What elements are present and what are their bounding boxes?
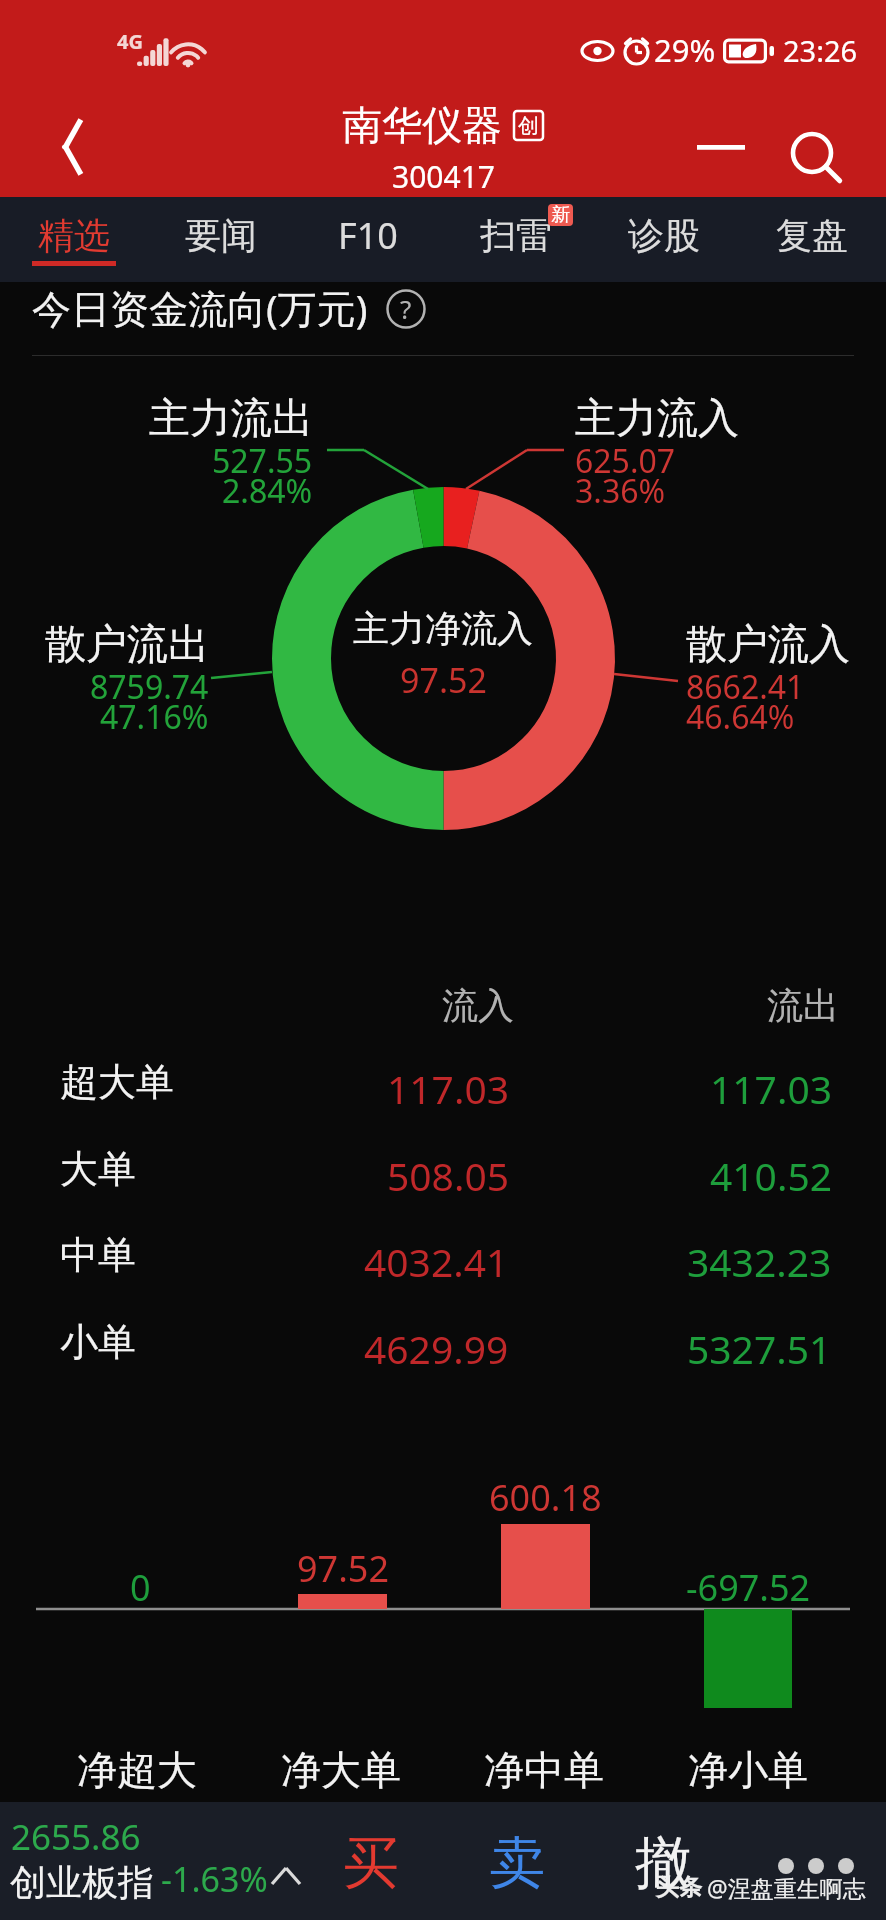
staticText: 净中单 (484, 1745, 604, 1795)
staticText: 4032.41 (364, 1235, 509, 1288)
staticText: 23:26 (783, 31, 858, 70)
staticText: 97.52 (400, 657, 487, 703)
button[interactable]: 撤 (603, 1802, 723, 1920)
staticText: 流入 (442, 983, 514, 1028)
staticText: 扫雷 (480, 213, 552, 258)
staticText: 508.05 (387, 1149, 509, 1202)
staticText: 大单 (60, 1145, 136, 1193)
button[interactable]: 诊股 (590, 197, 738, 282)
staticText: 要闻 (185, 213, 257, 258)
staticText: -697.52 (686, 1563, 811, 1612)
button[interactable]: 中单 (0, 1217, 886, 1303)
staticText: 410.52 (710, 1149, 832, 1202)
staticText: F10 (338, 211, 398, 260)
staticText: 撤 (635, 1828, 691, 1899)
staticText: 3.36% (575, 469, 666, 513)
button[interactable]: 扫雷 (442, 197, 590, 282)
staticText: 散户流出 (45, 619, 209, 671)
button[interactable]: 精选 (0, 197, 147, 282)
staticText: 净大单 (281, 1745, 401, 1795)
staticText: @涅盘重生啊志 (707, 1872, 866, 1903)
staticText: 46.64% (686, 695, 795, 739)
button[interactable]: Search (772, 107, 852, 187)
staticText: 2.84% (222, 469, 313, 513)
button[interactable]: Back (36, 113, 104, 181)
button[interactable]: 大单 (0, 1131, 886, 1217)
staticText: 净超大 (77, 1745, 197, 1795)
staticText: 超大单 (60, 1058, 174, 1106)
staticText: 8662.41 (686, 665, 805, 709)
button[interactable]: Minimize (681, 107, 761, 187)
staticText: 600.18 (489, 1473, 602, 1522)
staticText: 流出 (767, 983, 839, 1028)
staticText: 2655.86 (11, 1813, 141, 1861)
staticText: 南华仪器 (342, 100, 502, 150)
staticText: 创业板指 (10, 1860, 154, 1905)
staticText: 头条 (656, 1873, 702, 1902)
staticText: 47.16% (100, 695, 209, 739)
button[interactable]: 复盘 (738, 197, 886, 282)
staticText: 新 (551, 204, 570, 225)
staticText: 8759.74 (90, 665, 209, 709)
staticText: 诊股 (628, 213, 700, 258)
button[interactable]: 买 (311, 1802, 431, 1920)
staticText: 净小单 (688, 1745, 808, 1795)
staticText: 300417 (392, 156, 495, 197)
staticText: 97.52 (297, 1544, 390, 1593)
staticText: 创 (518, 113, 539, 139)
staticText: 主力流出 (149, 393, 313, 445)
button[interactable]: 超大单 (0, 1044, 886, 1130)
staticText: 3432.23 (687, 1235, 832, 1288)
staticText: 117.03 (710, 1062, 832, 1115)
staticText: 625.07 (575, 439, 676, 483)
staticText: -1.63% (161, 1856, 268, 1902)
button[interactable]: 2655.86 (10, 1812, 310, 1912)
staticText: 卖 (489, 1828, 545, 1899)
staticText: 复盘 (776, 213, 848, 258)
staticText: 主力流入 (575, 393, 739, 445)
button[interactable]: Help (386, 289, 426, 329)
staticText: 今日资金流向(万元) (32, 281, 368, 334)
staticText: 4629.99 (364, 1322, 509, 1375)
button[interactable]: F10 (294, 197, 442, 282)
staticText: 117.03 (387, 1062, 509, 1115)
button[interactable]: 卖 (457, 1802, 577, 1920)
staticText: 买 (343, 1828, 399, 1899)
staticText: 主力净流入 (353, 606, 533, 651)
staticText: 小单 (60, 1318, 136, 1366)
button[interactable]: 小单 (0, 1304, 886, 1390)
button[interactable]: 要闻 (147, 197, 294, 282)
staticText: 0 (130, 1563, 151, 1612)
staticText: 散户流入 (686, 619, 850, 671)
staticText: 5327.51 (687, 1322, 832, 1375)
staticText: 527.55 (212, 439, 313, 483)
staticText: 4G (117, 28, 143, 55)
staticText: 29% (654, 29, 716, 71)
button[interactable]: More (760, 1802, 876, 1920)
staticText: 精选 (38, 213, 110, 258)
staticText: 中单 (60, 1231, 136, 1279)
staticText: ? (400, 291, 412, 326)
